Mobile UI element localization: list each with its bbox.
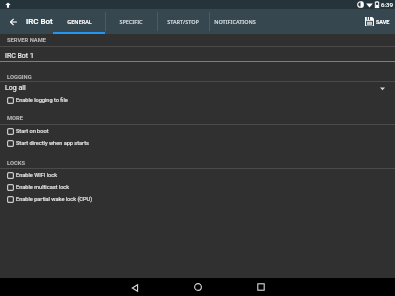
button[interactable]: Start on boot (0, 125, 395, 137)
staticText: Enable logging to file (16, 97, 68, 104)
staticText: SERVER NAME (7, 37, 47, 44)
staticText: 6:39 (381, 1, 393, 8)
staticText: IRC Bot 1 (5, 52, 34, 60)
button[interactable]: Enable multicast lock (0, 181, 395, 193)
staticText: Enable partial wake lock (CPU) (16, 196, 93, 203)
button[interactable]: Recents (229, 278, 292, 296)
button[interactable]: NOTIFICATIONS (209, 9, 261, 34)
staticText: START/STOP (167, 18, 199, 25)
staticText: Enable WIFI lock (16, 172, 57, 179)
button[interactable]: Enable partial wake lock (CPU) (0, 193, 395, 205)
staticText: LOCKS (7, 160, 25, 167)
staticText: MORE (7, 115, 24, 122)
button[interactable]: Enable WIFI lock (0, 169, 395, 181)
button[interactable]: START/STOP (157, 9, 209, 34)
staticText: SPECIFIC (119, 18, 143, 25)
staticText: Log all (5, 84, 26, 92)
button[interactable]: Back (103, 278, 166, 296)
button[interactable]: SAVE (360, 9, 395, 34)
staticText: LOGGING (7, 74, 32, 81)
staticText: Enable multicast lock (16, 184, 70, 191)
button[interactable]: Start directly when app starts (0, 137, 395, 149)
staticText: Start on boot (16, 128, 49, 135)
staticText: GENERAL (67, 18, 92, 25)
button[interactable]: IRC Bot 1 (0, 47, 395, 61)
staticText: NOTIFICATIONS (214, 18, 256, 25)
staticText: SAVE (376, 19, 390, 25)
button[interactable]: SPECIFIC (105, 9, 157, 34)
button[interactable]: Back (0, 9, 26, 34)
staticText: Start directly when app starts (16, 140, 89, 147)
button[interactable]: GENERAL (53, 9, 105, 34)
button[interactable]: Log all (0, 82, 395, 94)
button[interactable]: Enable logging to file (0, 94, 395, 106)
button[interactable]: Home (166, 278, 229, 296)
staticText: IRC Bot (26, 17, 53, 26)
